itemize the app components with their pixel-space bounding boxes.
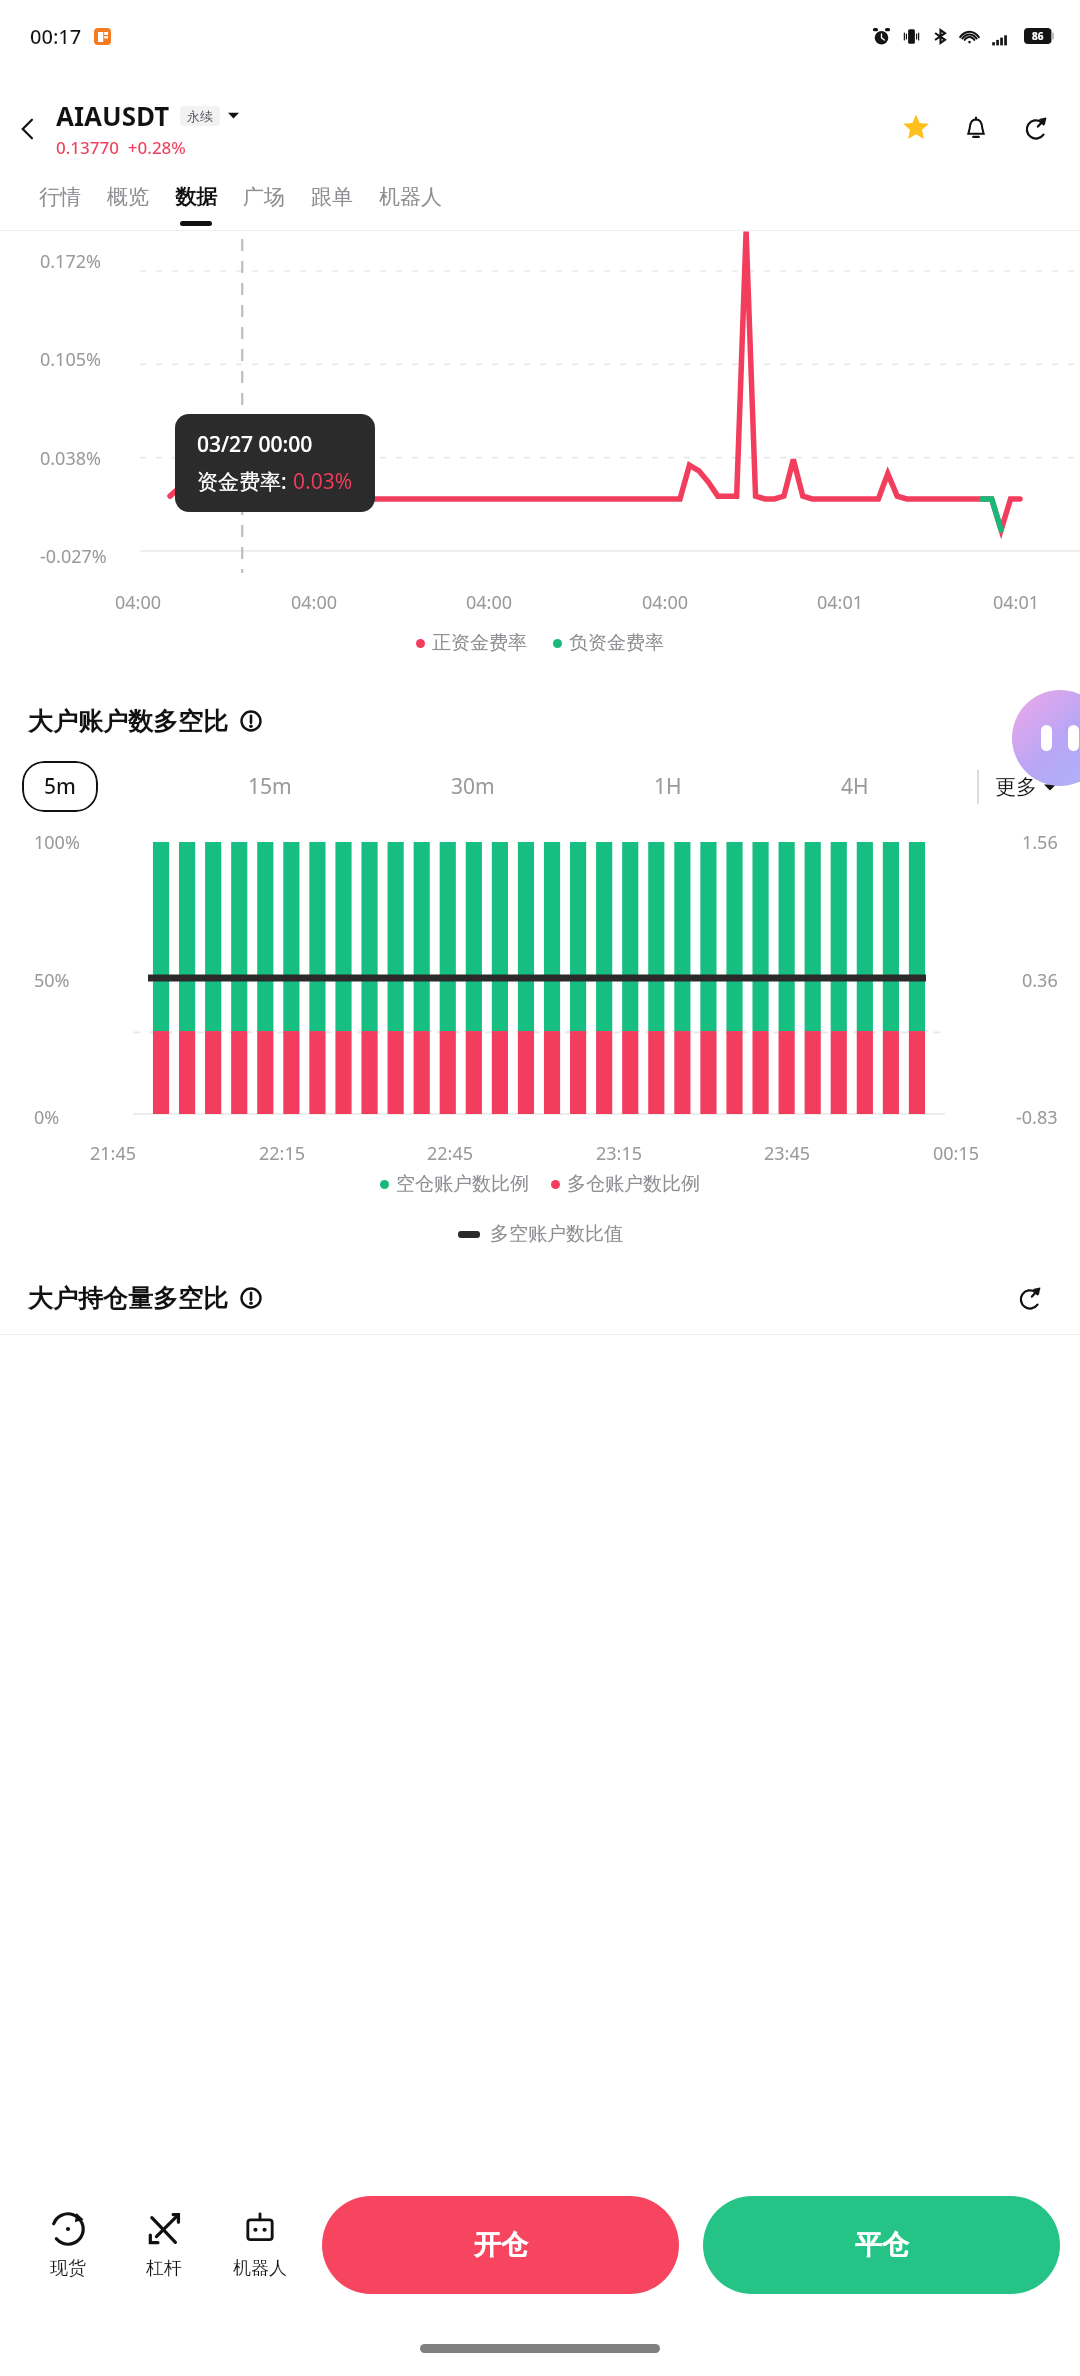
button[interactable]: 现货	[20, 2204, 116, 2286]
staticText: -0.027%	[40, 544, 107, 569]
staticText: 0.105%	[40, 347, 101, 372]
staticText: 04:00	[642, 590, 689, 615]
staticText: 03/27 00:00	[197, 430, 313, 459]
staticText: 机器人	[233, 2257, 287, 2280]
button[interactable]: 开仓	[322, 2196, 679, 2294]
button[interactable]: 更多	[995, 766, 1056, 808]
staticText: 04:00	[466, 590, 513, 615]
button[interactable]: Select contract	[228, 110, 239, 121]
button[interactable]: Favorite	[892, 104, 940, 152]
button[interactable]: 行情	[26, 184, 94, 226]
staticText: 正资金费率	[432, 631, 527, 655]
staticText: 机器人	[379, 184, 442, 210]
button[interactable]: 5m	[22, 761, 98, 812]
staticText: 0%	[34, 1105, 60, 1130]
staticText: 永续	[187, 108, 213, 124]
staticText: 00:17	[30, 23, 82, 50]
staticText: 04:01	[817, 590, 864, 615]
staticText: 现货	[50, 2257, 86, 2280]
staticText: 5m	[44, 772, 76, 801]
staticText: 15m	[248, 772, 292, 801]
staticText: 资金费率:	[197, 467, 293, 496]
staticText: 0.13770 +0.28%	[56, 136, 186, 159]
button[interactable]: Share chart	[1008, 699, 1052, 743]
staticText: 开仓	[474, 2228, 528, 2262]
staticText: 0.172%	[40, 249, 101, 274]
button[interactable]: 杠杆	[116, 2204, 212, 2286]
staticText: 0.038%	[40, 446, 101, 471]
staticText: 00:15	[933, 1141, 980, 1166]
staticText: 平仓	[855, 2228, 909, 2262]
staticText: 30m	[451, 772, 495, 801]
staticText: 跟单	[311, 184, 353, 210]
staticText: 杠杆	[146, 2257, 182, 2280]
staticText: 04:00	[291, 590, 338, 615]
staticText: 23:15	[596, 1141, 643, 1166]
button[interactable]: 跟单	[298, 184, 366, 226]
staticText: 22:45	[427, 1141, 474, 1166]
button[interactable]: 4H	[833, 761, 877, 812]
staticText: 广场	[243, 184, 285, 210]
button[interactable]: 概览	[94, 184, 162, 226]
button[interactable]: 30m	[443, 761, 503, 812]
button[interactable]: 数据	[162, 184, 230, 226]
staticText: 04:01	[993, 590, 1040, 615]
staticText: 100%	[34, 830, 80, 855]
staticText: 大户持仓量多空比	[28, 1283, 228, 1314]
staticText: 负资金费率	[569, 631, 664, 655]
button[interactable]: Share chart	[1008, 1276, 1052, 1320]
staticText: 0.36	[1022, 968, 1058, 993]
staticText: 空仓账户数比例	[396, 1172, 529, 1196]
button[interactable]: Info	[238, 1285, 264, 1311]
button[interactable]: 永续	[187, 108, 213, 124]
button[interactable]: 机器人	[212, 2204, 308, 2286]
staticText: 数据	[175, 184, 217, 210]
staticText: 行情	[39, 184, 81, 210]
staticText: 更多	[995, 774, 1037, 800]
staticText: 50%	[34, 968, 70, 993]
staticText: 概览	[107, 184, 149, 210]
staticText: 21:45	[90, 1141, 137, 1166]
staticText: AIAUSDT	[56, 98, 170, 133]
staticText: 4H	[841, 772, 869, 801]
button[interactable]: Share	[1012, 104, 1060, 152]
button[interactable]: 15m	[240, 761, 300, 812]
button[interactable]: Back	[0, 101, 56, 157]
button[interactable]: 机器人	[366, 184, 455, 226]
button[interactable]: Assistant	[1012, 690, 1080, 786]
button[interactable]: 平仓	[703, 2196, 1060, 2294]
staticText: 04:00	[115, 590, 162, 615]
staticText: 86	[1032, 29, 1044, 43]
staticText: -0.83	[1016, 1105, 1058, 1130]
staticText: 0.03%	[293, 467, 353, 496]
staticText: 22:15	[259, 1141, 306, 1166]
staticText: 多仓账户数比例	[567, 1172, 700, 1196]
staticText: 1.56	[1022, 830, 1058, 855]
staticText: 大户账户数多空比	[28, 706, 228, 737]
button[interactable]: 广场	[230, 184, 298, 226]
staticText: 多空账户数比值	[490, 1222, 623, 1246]
button[interactable]: 1H	[646, 761, 690, 812]
staticText: 23:45	[764, 1141, 811, 1166]
button[interactable]: Info	[238, 708, 264, 734]
staticText: 1H	[654, 772, 682, 801]
button[interactable]: Alerts	[952, 104, 1000, 152]
